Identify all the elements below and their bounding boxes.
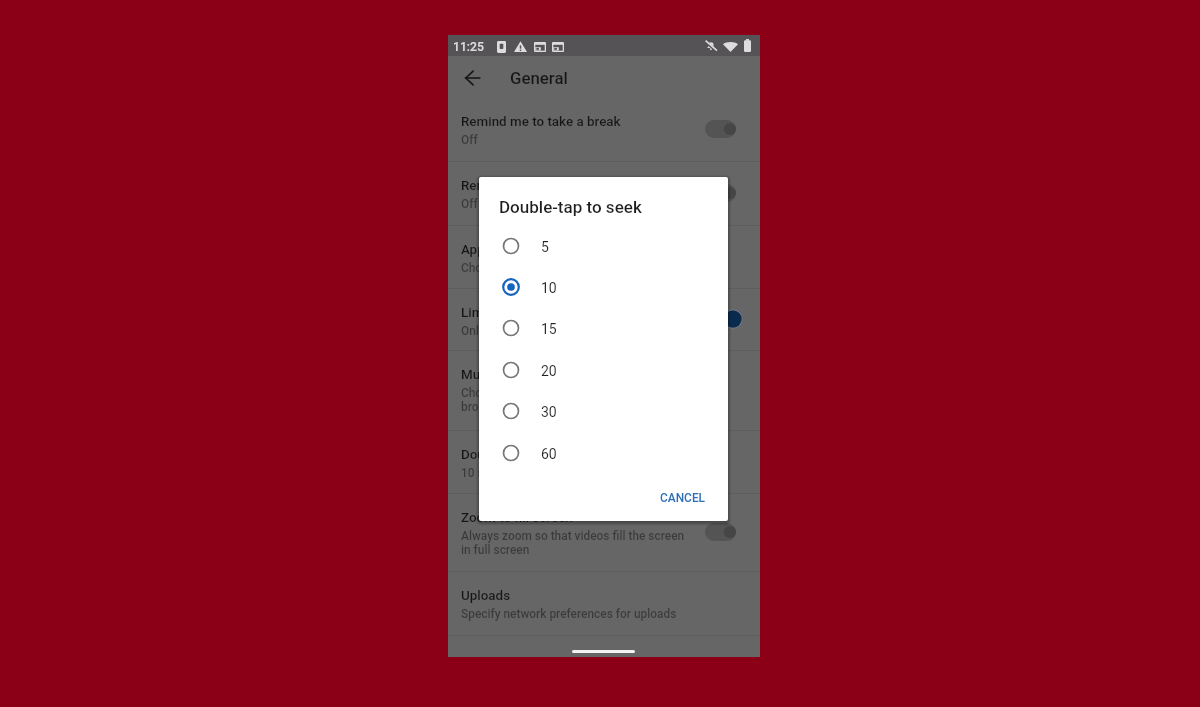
staticText: 10 [541,280,557,296]
staticText: Double-tap to seek [499,197,642,217]
button[interactable]: 15 [479,307,728,348]
button[interactable]: Double-tap to seek [448,430,760,493]
staticText: Specify network preferences for uploads [461,607,677,621]
button[interactable]: Limit mobile data usage [448,288,760,350]
button[interactable]: Zoom to fill screen [448,493,760,571]
button[interactable]: Remind me when it's bedtime switch [701,179,746,207]
staticText: General [510,68,568,88]
button[interactable]: Navigate up [459,64,486,91]
staticText: in full screen [461,543,530,557]
button[interactable]: Uploads [448,571,760,635]
button[interactable]: Remind me when it's bedtime [448,161,760,225]
button[interactable]: 30 [479,390,728,431]
staticText: 5 [541,239,549,255]
button[interactable]: Remind me to take a break [448,97,760,161]
button[interactable]: Zoom to fill screen switch [701,518,746,546]
button[interactable]: 60 [479,432,728,473]
staticText: 10 seconds [461,466,523,480]
staticText: browsing [461,400,510,414]
button[interactable]: CANCEL [650,481,716,515]
staticText: Limit mobile data usage [461,305,605,321]
button[interactable]: 5 [479,225,728,266]
staticText: Choose when to mute video previews while [461,386,690,400]
staticText: Off [461,133,478,147]
button[interactable]: Muted playback in feeds [448,350,760,430]
staticText: Muted playback in feeds [461,367,608,383]
staticText: Remind me to take a break [461,114,621,130]
button[interactable]: Appearance [448,225,760,288]
staticText: Zoom to fill screen [461,510,573,526]
button[interactable]: 10 [479,266,728,307]
staticText: Appearance [461,242,533,258]
button[interactable]: Remind me to take a break switch [701,115,746,143]
staticText: Double-tap to seek [461,447,574,463]
staticText: Remind me when it's bedtime [461,178,637,194]
staticText: 11:25 [453,40,484,54]
button[interactable]: 20 [479,349,728,390]
button[interactable]: Limit mobile data usage switch [701,305,746,333]
staticText: Always zoom so that videos fill the scre… [461,529,685,543]
staticText: Choose light or dark theme [461,261,605,275]
staticText: 30 [541,404,557,420]
staticText: CANCEL [660,491,706,505]
staticText: Only stream HD on Wi-Fi [461,324,591,338]
staticText: 20 [541,363,557,379]
staticText: Uploads [461,588,511,604]
staticText: 60 [541,446,557,462]
staticText: Off [461,197,478,211]
staticText: 15 [541,321,557,337]
